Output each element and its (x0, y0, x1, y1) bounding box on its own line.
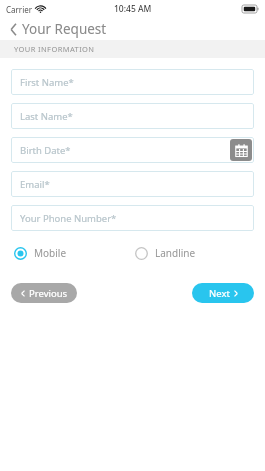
button[interactable]: Pick birth date (230, 139, 252, 161)
staticText: Birth Date* (20, 144, 71, 157)
staticText: Your Request (22, 20, 107, 38)
staticText: Landline (155, 246, 196, 260)
button[interactable]: Mobile (14, 246, 73, 260)
button[interactable]: Previous (11, 283, 77, 303)
button[interactable]: Next (192, 283, 254, 303)
button[interactable]: Your Request (0, 18, 265, 40)
staticText: First Name* (20, 76, 74, 89)
staticText: Mobile (34, 246, 67, 260)
staticText: Email* (20, 178, 50, 191)
staticText: Carrier (6, 4, 33, 15)
staticText: YOUR INFORMATION (14, 44, 95, 54)
button[interactable]: Your Phone Number* (11, 205, 254, 231)
button[interactable]: Last Name* (11, 103, 254, 129)
button[interactable]: Birth Date* (11, 137, 254, 163)
staticText: 10:45 AM (114, 3, 152, 15)
button[interactable]: Landline (135, 246, 202, 260)
staticText: Previous (29, 287, 68, 300)
staticText: Last Name* (20, 110, 73, 123)
button[interactable]: Email* (11, 171, 254, 197)
button[interactable]: First Name* (11, 69, 254, 95)
staticText: Next (209, 287, 230, 300)
staticText: Your Phone Number* (20, 212, 117, 225)
